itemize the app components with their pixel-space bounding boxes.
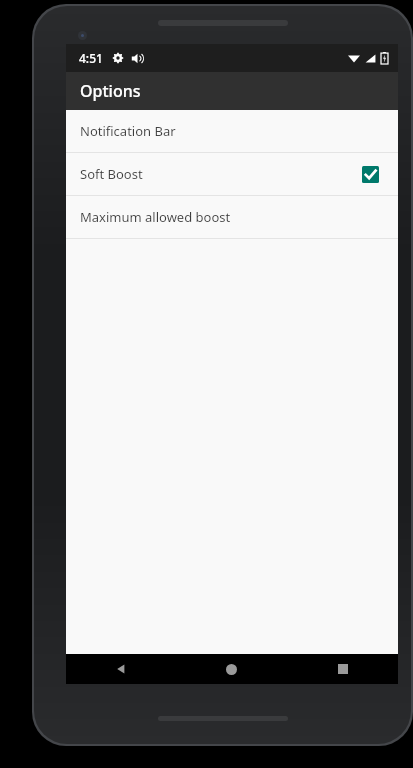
button[interactable]: Recent apps xyxy=(287,654,398,684)
staticText: Options xyxy=(80,80,141,102)
staticText: Maximum allowed boost xyxy=(80,208,380,226)
button[interactable]: Maximum allowed boost xyxy=(66,196,398,238)
button[interactable]: Soft Boost xyxy=(66,153,398,195)
staticText: Soft Boost xyxy=(80,165,360,183)
staticText: Notification Bar xyxy=(80,122,380,140)
button[interactable]: Home xyxy=(176,654,287,684)
staticText: 4:51 xyxy=(79,50,103,66)
button[interactable]: Back xyxy=(66,654,176,684)
button[interactable]: Soft Boost toggle xyxy=(360,164,380,184)
button[interactable]: Notification Bar xyxy=(66,110,398,152)
